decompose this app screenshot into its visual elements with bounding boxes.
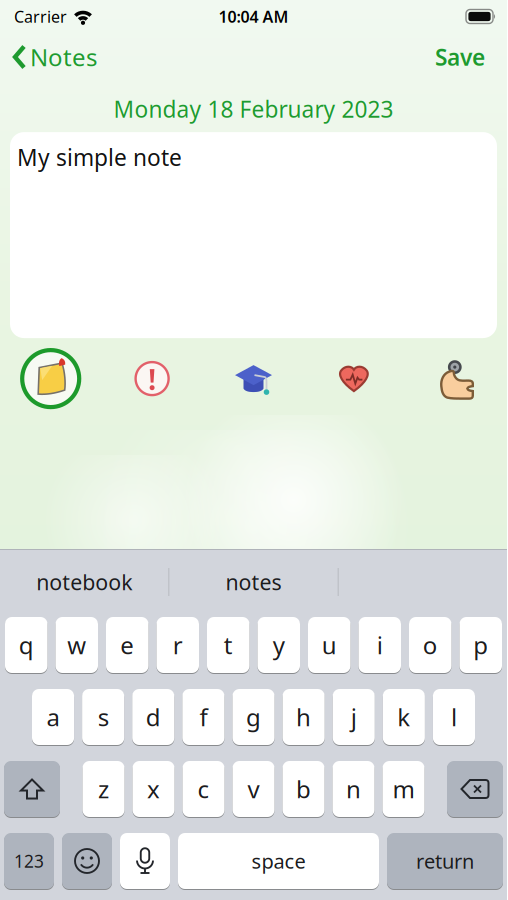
button[interactable]: b xyxy=(282,761,324,817)
button[interactable]: Workout category xyxy=(406,357,507,400)
button[interactable]: c xyxy=(182,761,224,817)
button[interactable]: w xyxy=(55,617,98,673)
button[interactable]: u xyxy=(308,617,350,673)
staticText: y xyxy=(273,629,285,661)
staticText: u xyxy=(322,629,337,661)
staticText: My simple note xyxy=(17,142,182,172)
staticText: Carrier xyxy=(14,6,67,27)
staticText: notebook xyxy=(36,568,132,596)
staticText: c xyxy=(197,773,209,805)
button[interactable]: a xyxy=(32,689,74,745)
staticText: g xyxy=(246,701,261,733)
button[interactable]: return xyxy=(387,833,503,889)
button[interactable]: k xyxy=(383,689,425,745)
button[interactable]: d xyxy=(132,689,174,745)
staticText: l xyxy=(451,701,457,733)
button[interactable]: s xyxy=(82,689,124,745)
button[interactable]: l xyxy=(433,689,475,745)
staticText: d xyxy=(146,701,161,733)
button[interactable]: Important category xyxy=(101,362,203,395)
button[interactable]: v xyxy=(232,761,274,817)
button[interactable]: notebook xyxy=(0,568,168,596)
button[interactable]: Shift xyxy=(4,761,60,817)
staticText: s xyxy=(98,701,109,733)
button[interactable]: Emoji xyxy=(62,833,112,889)
button[interactable]: Dictate xyxy=(120,833,170,889)
button[interactable]: m xyxy=(382,761,424,817)
button[interactable]: Save xyxy=(435,42,507,72)
button[interactable]: f xyxy=(182,689,224,745)
staticText: r xyxy=(173,629,183,661)
button[interactable]: n xyxy=(332,761,374,817)
staticText: Notes xyxy=(30,41,97,73)
button[interactable]: r xyxy=(156,617,199,673)
button[interactable]: h xyxy=(283,689,325,745)
button[interactable]: 123 xyxy=(4,833,54,889)
button[interactable]: Health category xyxy=(304,362,406,395)
button[interactable]: space xyxy=(178,833,379,889)
button[interactable]: Back xyxy=(0,41,97,73)
button[interactable]: x xyxy=(132,761,174,817)
button[interactable]: Study category xyxy=(203,360,304,398)
staticText: 10:04 AM xyxy=(218,6,288,27)
staticText: n xyxy=(346,773,361,805)
staticText: v xyxy=(247,773,259,805)
button[interactable]: p xyxy=(459,617,502,673)
staticText: z xyxy=(98,773,109,805)
staticText: t xyxy=(224,629,233,661)
button[interactable]: Delete xyxy=(447,761,503,817)
staticText: o xyxy=(423,629,438,661)
staticText: 123 xyxy=(14,849,44,872)
button[interactable]: g xyxy=(232,689,274,745)
button[interactable]: Note category xyxy=(0,350,101,407)
staticText: w xyxy=(67,629,86,661)
staticText: i xyxy=(377,629,383,661)
staticText: f xyxy=(199,701,207,733)
staticText: Save xyxy=(435,42,485,72)
staticText: Monday 18 February 2023 xyxy=(113,94,393,124)
button[interactable]: y xyxy=(257,617,300,673)
staticText: return xyxy=(416,848,474,874)
staticText: q xyxy=(19,629,34,661)
staticText: e xyxy=(120,629,134,661)
button[interactable]: j xyxy=(333,689,375,745)
button[interactable]: notes xyxy=(169,568,338,596)
button[interactable]: t xyxy=(207,617,249,673)
button[interactable]: i xyxy=(358,617,401,673)
button[interactable]: z xyxy=(82,761,124,817)
staticText: j xyxy=(351,701,357,733)
staticText: b xyxy=(296,773,311,805)
button[interactable]: q xyxy=(5,617,47,673)
staticText: space xyxy=(251,848,305,874)
staticText: notes xyxy=(225,568,281,596)
staticText: m xyxy=(392,773,414,805)
button[interactable]: e xyxy=(106,617,148,673)
staticText: k xyxy=(397,701,410,733)
staticText: h xyxy=(296,701,311,733)
staticText: a xyxy=(47,701,60,733)
button[interactable]: o xyxy=(409,617,451,673)
staticText: p xyxy=(473,629,488,661)
staticText: x xyxy=(147,773,160,805)
